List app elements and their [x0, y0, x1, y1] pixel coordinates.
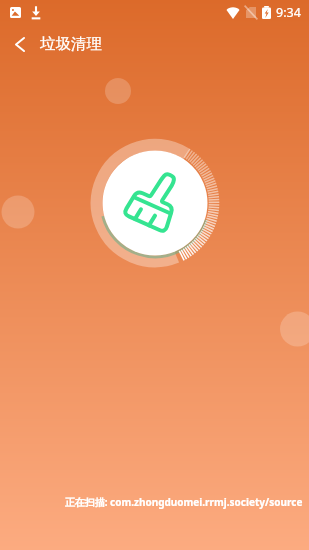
- staticText: 9:34: [276, 4, 301, 21]
- button[interactable]: Back: [0, 24, 40, 64]
- staticText: 垃圾清理: [40, 34, 102, 54]
- staticText: 正在扫描: com.zhongduomei.rrmj.society/sourc…: [29, 495, 309, 509]
